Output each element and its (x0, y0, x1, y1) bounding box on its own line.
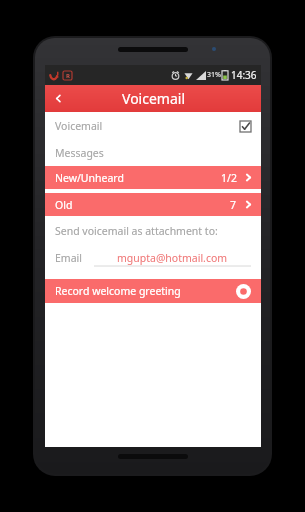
staticText: 7 (230, 198, 237, 212)
button[interactable]: New/Unheard (45, 166, 261, 189)
staticText: Old (55, 198, 73, 212)
button[interactable]: Back (45, 85, 71, 112)
staticText: 1/2 (221, 171, 237, 185)
staticText: Voicemail (122, 89, 185, 108)
staticText: Send voicemail as attachment to: (55, 224, 218, 238)
staticText: New/Unheard (55, 171, 124, 185)
staticText: mgupta@hotmail.com (117, 251, 228, 265)
button[interactable]: Record welcome greeting (45, 279, 261, 303)
staticText: R (66, 72, 70, 80)
staticText: Email (55, 251, 82, 265)
staticText: 31% (207, 70, 221, 80)
staticText: Messages (55, 146, 104, 160)
staticText: Record welcome greeting (55, 284, 181, 298)
button[interactable]: Voicemail (45, 112, 261, 140)
button[interactable]: Email (45, 246, 261, 270)
button[interactable]: Old (45, 193, 261, 216)
staticText: 14:36 (231, 68, 257, 82)
staticText: Voicemail (55, 119, 103, 133)
